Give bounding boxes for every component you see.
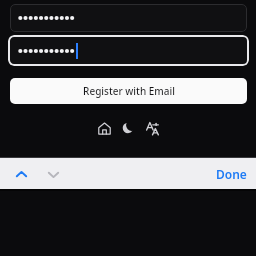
button[interactable]: Done bbox=[216, 166, 247, 182]
button[interactable]: Next field bbox=[40, 161, 66, 187]
button[interactable]: Dark mode bbox=[116, 116, 140, 140]
staticText: Register with Email bbox=[83, 84, 175, 98]
button[interactable]: Previous field bbox=[8, 161, 34, 187]
button[interactable]: Register with Email bbox=[10, 78, 247, 104]
button[interactable]: Confirm password field bbox=[8, 35, 249, 66]
button[interactable]: Home bbox=[92, 116, 116, 140]
button[interactable]: Translate bbox=[140, 116, 164, 140]
button[interactable]: Password field bbox=[10, 4, 247, 32]
staticText: Done bbox=[216, 166, 247, 182]
